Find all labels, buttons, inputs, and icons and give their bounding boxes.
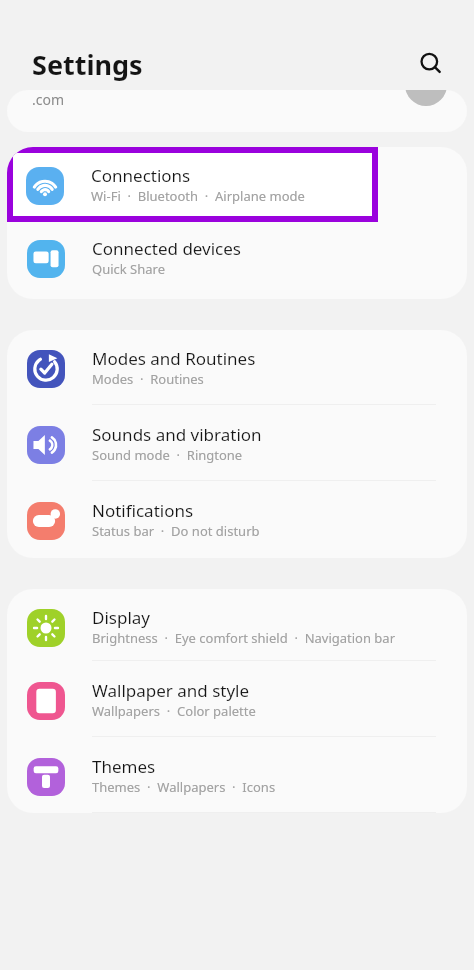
- staticText: Connections: [91, 164, 191, 187]
- staticText: Modes and Routines: [92, 347, 256, 370]
- staticText: Themes · Wallpapers · Icons: [92, 778, 276, 796]
- button[interactable]: Display: [7, 589, 467, 661]
- staticText: Connected devices: [92, 237, 242, 260]
- staticText: Wallpaper and style: [92, 679, 250, 702]
- button[interactable]: Search: [408, 41, 454, 87]
- button[interactable]: Modes and Routines: [7, 330, 467, 405]
- staticText: Status bar · Do not disturb: [92, 522, 260, 540]
- staticText: Sound mode · Ringtone: [92, 446, 243, 464]
- staticText: Notifications: [92, 499, 194, 522]
- staticText: Themes: [92, 755, 156, 778]
- button[interactable]: Connections: [13, 153, 372, 216]
- button[interactable]: Connected devices: [7, 222, 467, 299]
- button[interactable]: Wallpaper and style: [7, 661, 467, 737]
- staticText: Sounds and vibration: [92, 423, 262, 446]
- staticText: Modes · Routines: [92, 370, 204, 388]
- button[interactable]: Themes: [7, 737, 467, 813]
- staticText: Settings: [32, 46, 143, 83]
- button[interactable]: Sounds and vibration: [7, 405, 467, 481]
- staticText: Brightness · Eye comfort shield · Naviga…: [92, 629, 396, 647]
- button[interactable]: Notifications: [7, 481, 467, 558]
- button[interactable]: .com: [7, 90, 467, 132]
- staticText: Wallpapers · Color palette: [92, 702, 256, 720]
- staticText: .com: [32, 90, 65, 109]
- staticText: Wi-Fi · Bluetooth · Airplane mode: [91, 187, 305, 205]
- staticText: Quick Share: [92, 260, 166, 278]
- staticText: Display: [92, 606, 150, 629]
